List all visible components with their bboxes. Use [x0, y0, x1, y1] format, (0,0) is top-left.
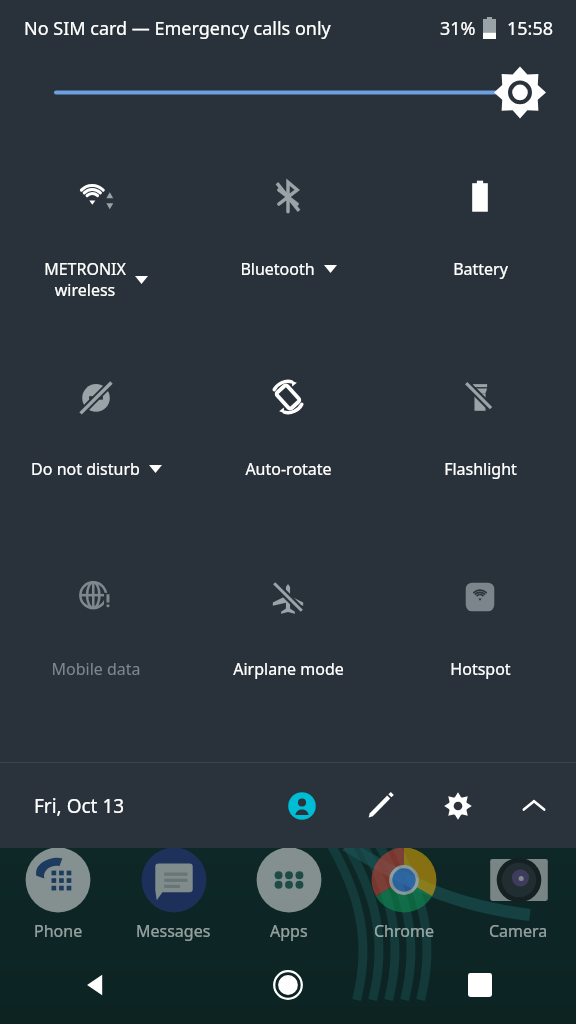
button[interactable]: Phone [0, 840, 116, 950]
staticText: Phone [34, 920, 83, 942]
staticText: Bluetooth [240, 258, 315, 280]
button[interactable]: Recents [452, 957, 508, 1013]
button[interactable]: Apps [231, 840, 346, 950]
button[interactable]: Edit [358, 784, 402, 828]
staticText: 15:58 [507, 16, 554, 41]
button[interactable]: Airplane mode [192, 530, 384, 730]
button[interactable]: Chrome [346, 840, 461, 950]
staticText: Do not disturb [31, 458, 140, 480]
button[interactable]: Back [68, 957, 124, 1013]
staticText: Chrome [374, 920, 434, 942]
button[interactable]: Messages [116, 840, 231, 950]
button[interactable]: User [280, 784, 324, 828]
button[interactable]: Hotspot [384, 530, 576, 730]
button[interactable]: Auto-rotate [192, 330, 384, 530]
staticText: Apps [270, 920, 308, 942]
staticText: Flashlight [444, 458, 517, 480]
staticText: Fri, Oct 13 [34, 793, 125, 819]
staticText: Battery [453, 258, 508, 280]
staticText: Hotspot [450, 658, 511, 680]
button[interactable]: Flashlight [384, 330, 576, 530]
button[interactable]: Battery [384, 130, 576, 330]
staticText: Mobile data [51, 658, 141, 680]
staticText: Messages [136, 920, 211, 942]
button[interactable]: Camera [461, 840, 576, 950]
button[interactable]: Do not disturb [0, 330, 192, 530]
staticText: Camera [489, 920, 548, 942]
button[interactable]: Settings [436, 784, 480, 828]
staticText: 31% [440, 16, 476, 41]
button[interactable]: Wi‑Fi METRONIX wireless [0, 130, 192, 330]
button[interactable]: Collapse [512, 784, 556, 828]
button[interactable]: Bluetooth [192, 130, 384, 330]
button[interactable]: Brightness [0, 56, 576, 126]
staticText: METRONIX wireless [44, 258, 126, 301]
staticText: Auto-rotate [245, 458, 332, 480]
staticText: Airplane mode [233, 658, 344, 680]
button[interactable]: Home [260, 957, 316, 1013]
staticText: No SIM card — Emergency calls only [24, 16, 331, 41]
button[interactable]: Mobile data [0, 530, 192, 730]
